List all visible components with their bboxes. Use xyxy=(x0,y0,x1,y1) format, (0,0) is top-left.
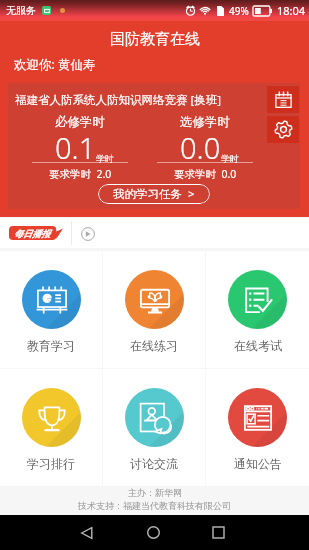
button[interactable]: 每日播报 xyxy=(9,226,63,240)
button[interactable]: 教育学习 xyxy=(0,251,102,368)
staticText: 0.1 xyxy=(55,128,96,167)
staticText: 福建省人防系统人防知识网络竞赛 [换班] xyxy=(15,92,222,108)
staticText: 要求学时 0.0 xyxy=(174,167,237,181)
staticText: 欢迎你: 黄仙寿 xyxy=(14,56,96,73)
staticText: 我的学习任务 > xyxy=(113,186,195,202)
staticText: 必修学时 xyxy=(55,114,105,130)
button[interactable]: Settings xyxy=(267,116,299,143)
staticText: 每日播报 xyxy=(14,228,50,239)
button[interactable]: 我的学习任务 > xyxy=(98,184,210,204)
button[interactable]: 讨论交流 xyxy=(103,369,205,486)
button[interactable]: 在线练习 xyxy=(103,251,205,368)
staticText: 要求学时 2.0 xyxy=(49,167,112,181)
button[interactable]: Recent apps xyxy=(196,515,241,550)
button[interactable]: 在线考试 xyxy=(206,251,309,368)
button[interactable]: 学习排行 xyxy=(0,369,102,486)
staticText: 国防教育在线 xyxy=(110,30,200,48)
button[interactable]: 通知公告 xyxy=(206,369,309,486)
button[interactable]: Home xyxy=(131,515,176,550)
staticText: 技术支持：福建当代教育科技有限公司 xyxy=(78,500,231,511)
staticText: 选修学时 xyxy=(180,114,230,130)
staticText: 学时 xyxy=(96,153,114,164)
staticText: 49% xyxy=(229,4,249,18)
staticText: 讨论交流 xyxy=(130,456,178,471)
staticText: 在线考试 xyxy=(234,338,282,353)
staticText: 无服务 xyxy=(6,4,36,17)
staticText: 教育学习 xyxy=(27,338,75,353)
staticText: 18:04 xyxy=(277,3,306,18)
staticText: 学时 xyxy=(221,153,239,164)
staticText: 学习排行 xyxy=(27,456,75,471)
staticText: 主办：新华网 xyxy=(128,487,182,498)
staticText: 通知公告 xyxy=(234,456,282,471)
button[interactable]: Back xyxy=(64,515,109,550)
staticText: 0.0 xyxy=(180,128,221,167)
button[interactable]: Calendar xyxy=(267,86,299,113)
button[interactable]: Play broadcast xyxy=(81,227,95,241)
staticText: 在线练习 xyxy=(130,338,178,353)
